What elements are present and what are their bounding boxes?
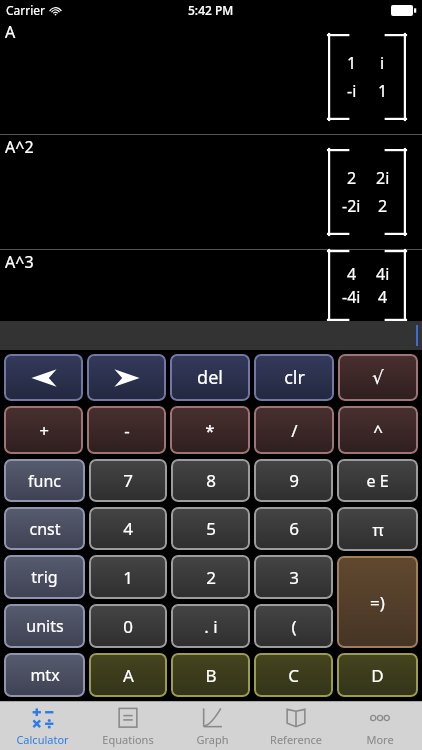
staticText: 6: [289, 517, 299, 540]
staticText: ^: [373, 419, 383, 442]
staticText: 5:42 PM: [188, 2, 234, 18]
staticText: 4: [123, 517, 133, 540]
button[interactable]: func: [4, 459, 85, 502]
button[interactable]: Calculator: [0, 702, 85, 750]
button[interactable]: π: [337, 507, 418, 551]
staticText: func: [28, 470, 61, 492]
staticText: Reference: [270, 732, 322, 747]
staticText: A: [5, 21, 16, 43]
button[interactable]: trig: [4, 555, 85, 599]
staticText: 7: [123, 469, 133, 492]
button[interactable]: left: [4, 354, 83, 401]
staticText: 0: [123, 615, 133, 638]
staticText: cnst: [29, 518, 61, 540]
button[interactable]: +: [4, 406, 83, 454]
button[interactable]: del: [170, 354, 250, 401]
staticText: B: [205, 664, 217, 687]
button[interactable]: 9: [254, 459, 333, 502]
button[interactable]: /: [254, 406, 334, 454]
staticText: Equations: [102, 732, 154, 747]
staticText: -: [124, 419, 130, 442]
staticText: C: [288, 664, 299, 687]
staticText: +: [39, 419, 49, 442]
staticText: i: [380, 52, 385, 74]
button[interactable]: *: [170, 406, 250, 454]
staticText: 2: [206, 566, 216, 589]
staticText: del: [197, 365, 223, 390]
staticText: 1: [347, 52, 357, 74]
staticText: D: [371, 664, 384, 687]
staticText: 8: [206, 469, 216, 492]
button[interactable]: D: [337, 653, 418, 697]
staticText: mtx: [30, 664, 60, 686]
button[interactable]: -: [87, 406, 166, 454]
staticText: 4: [347, 263, 357, 285]
staticText: Calculator: [16, 732, 69, 747]
button[interactable]: C: [254, 653, 333, 697]
staticText: 4: [378, 286, 388, 308]
staticText: A^3: [5, 251, 34, 273]
button[interactable]: 7: [89, 459, 167, 502]
staticText: √: [372, 367, 384, 388]
button[interactable]: 5: [171, 507, 250, 550]
staticText: *: [205, 419, 215, 442]
staticText: Carrier: [6, 2, 46, 18]
button[interactable]: A: [89, 653, 167, 697]
button[interactable]: 3: [254, 555, 333, 599]
staticText: 3: [289, 566, 299, 589]
staticText: (: [291, 615, 297, 638]
button[interactable]: =): [337, 556, 418, 648]
staticText: e E: [366, 470, 389, 492]
button[interactable]: B: [171, 653, 250, 697]
staticText: -i: [347, 80, 357, 102]
staticText: . i: [204, 615, 218, 638]
button[interactable]: More: [338, 702, 422, 750]
staticText: 1: [123, 566, 133, 589]
staticText: 1: [378, 80, 388, 102]
staticText: Graph: [196, 732, 229, 747]
staticText: 4i: [376, 263, 390, 285]
staticText: /: [291, 419, 298, 442]
staticText: clr: [284, 365, 305, 390]
staticText: trig: [31, 566, 58, 588]
button[interactable]: . i: [171, 604, 250, 648]
button[interactable]: mtx: [4, 653, 85, 697]
staticText: 2i: [376, 167, 390, 189]
staticText: A: [123, 664, 134, 687]
staticText: A^2: [5, 136, 34, 158]
button[interactable]: 2: [171, 555, 250, 599]
button[interactable]: clr: [254, 354, 334, 401]
staticText: -2i: [342, 195, 361, 217]
button[interactable]: units: [4, 604, 85, 648]
staticText: 2: [347, 167, 357, 189]
button[interactable]: Reference: [254, 702, 338, 750]
staticText: =): [370, 591, 385, 614]
staticText: -4i: [342, 286, 361, 308]
button[interactable]: Equations: [85, 702, 170, 750]
button[interactable]: Graph: [170, 702, 254, 750]
button[interactable]: e E: [337, 459, 418, 502]
button[interactable]: cnst: [4, 507, 85, 550]
button[interactable]: (: [254, 604, 333, 648]
staticText: π: [372, 518, 384, 541]
button[interactable]: 4: [89, 507, 167, 550]
button[interactable]: [0, 321, 422, 350]
button[interactable]: 1: [89, 555, 167, 599]
staticText: units: [26, 615, 64, 637]
staticText: More: [366, 732, 394, 747]
staticText: 9: [289, 469, 299, 492]
button[interactable]: right: [87, 354, 166, 401]
staticText: 5: [206, 517, 216, 540]
button[interactable]: 8: [171, 459, 250, 502]
button[interactable]: ^: [338, 406, 418, 454]
button[interactable]: 0: [89, 604, 167, 648]
button[interactable]: √: [338, 354, 418, 401]
staticText: 2: [378, 195, 388, 217]
button[interactable]: 6: [254, 507, 333, 550]
